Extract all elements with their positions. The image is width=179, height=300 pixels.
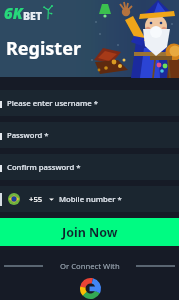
button[interactable]: Join Now <box>0 218 179 246</box>
staticText: BET <box>23 9 43 23</box>
staticText: Join Now <box>62 224 118 241</box>
staticText: Mobile number * <box>59 194 122 204</box>
staticText: Password * <box>7 130 49 140</box>
staticText: Confirm password * <box>7 162 81 172</box>
button[interactable]: Please enter username * <box>0 90 179 116</box>
staticText: Please enter username * <box>7 98 98 108</box>
button[interactable]: Password * <box>0 122 179 148</box>
staticText: Or Connect With <box>60 261 120 271</box>
staticText: Register <box>6 36 81 61</box>
button[interactable]: Sign in with Google <box>78 277 102 300</box>
staticText: 6K <box>4 3 23 23</box>
button[interactable]: Confirm password * <box>0 154 179 180</box>
button[interactable]: +55 <box>0 186 179 212</box>
staticText: +55 <box>29 194 43 204</box>
